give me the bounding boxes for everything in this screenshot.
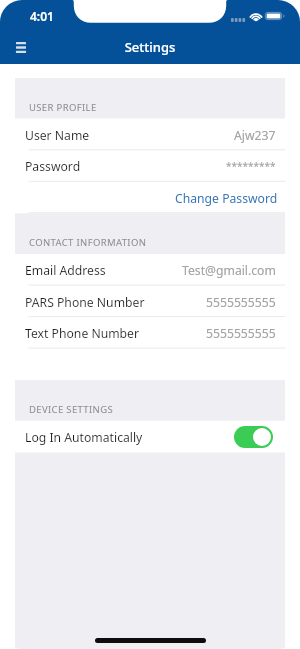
staticText: Log In Automatically [25,429,143,446]
staticText: PARS Phone Number [25,294,145,311]
staticText: User Name [25,127,90,144]
staticText: USER PROFILE [29,101,97,114]
button[interactable]: PARS Phone Number [15,286,285,318]
staticText: 5555555555 [206,294,276,311]
staticText: DEVICE SETTINGS [29,403,113,416]
staticText: Text Phone Number [25,325,140,342]
staticText: ********* [226,159,276,173]
button[interactable]: Email Address [15,254,285,286]
staticText: 5555555555 [206,325,276,342]
button[interactable]: Password [15,150,285,182]
button[interactable]: Open navigation menu [0,30,41,64]
staticText: 4:01 [30,8,54,24]
staticText: Settings [41,38,259,56]
staticText: Change Password [175,190,278,207]
staticText: CONTACT INFORMATION [29,236,147,249]
button[interactable]: User Name [15,119,285,151]
staticText: Password [25,158,81,175]
button[interactable]: Log In Automatically [15,421,285,453]
staticText: Email Address [25,262,106,279]
staticText: Test@gmail.com [182,262,276,279]
button[interactable]: Change Password [15,182,285,214]
button[interactable]: Text Phone Number [15,317,285,349]
staticText: Ajw237 [234,127,276,144]
